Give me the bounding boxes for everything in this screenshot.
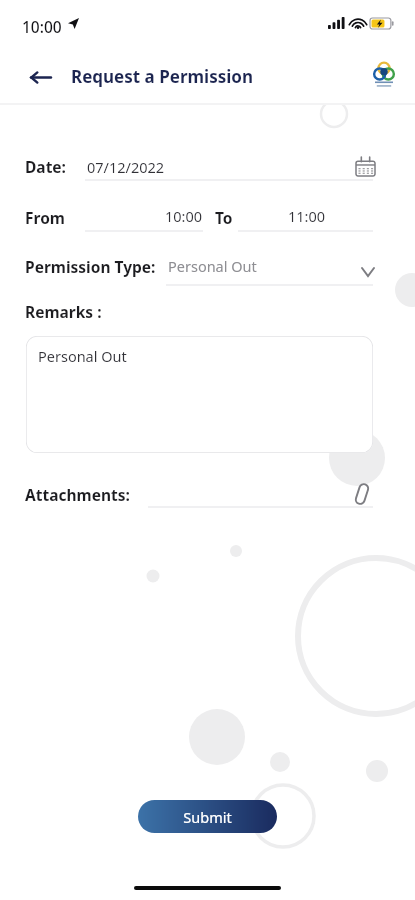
staticText: Personal Out [38,346,127,366]
button[interactable]: 11:00 [240,200,373,231]
button[interactable]: Submit [138,800,277,833]
staticText: To [215,207,233,228]
staticText: 11:00 [288,206,326,226]
staticText: Submit [183,807,232,827]
staticText: 10:00 [165,206,203,226]
staticText: 07/12/2022 [87,157,165,177]
staticText: From [25,207,65,228]
staticText: Request a Permission [71,65,253,88]
staticText: 10:00 [22,16,62,37]
staticText: Attachments: [25,484,130,505]
button[interactable]: Pick date [348,149,382,183]
button[interactable]: Attach file [344,476,380,512]
staticText: Permission Type: [25,256,156,277]
button[interactable]: Personal Out [26,336,373,453]
button[interactable]: Company logo [368,59,400,91]
staticText: Date: [25,156,66,177]
button[interactable]: 10:00 [85,200,203,231]
button[interactable]: Permission type dropdown [166,249,373,285]
staticText: Personal Out [168,256,257,276]
button[interactable]: Back [22,59,58,95]
staticText: Remarks : [25,301,102,322]
